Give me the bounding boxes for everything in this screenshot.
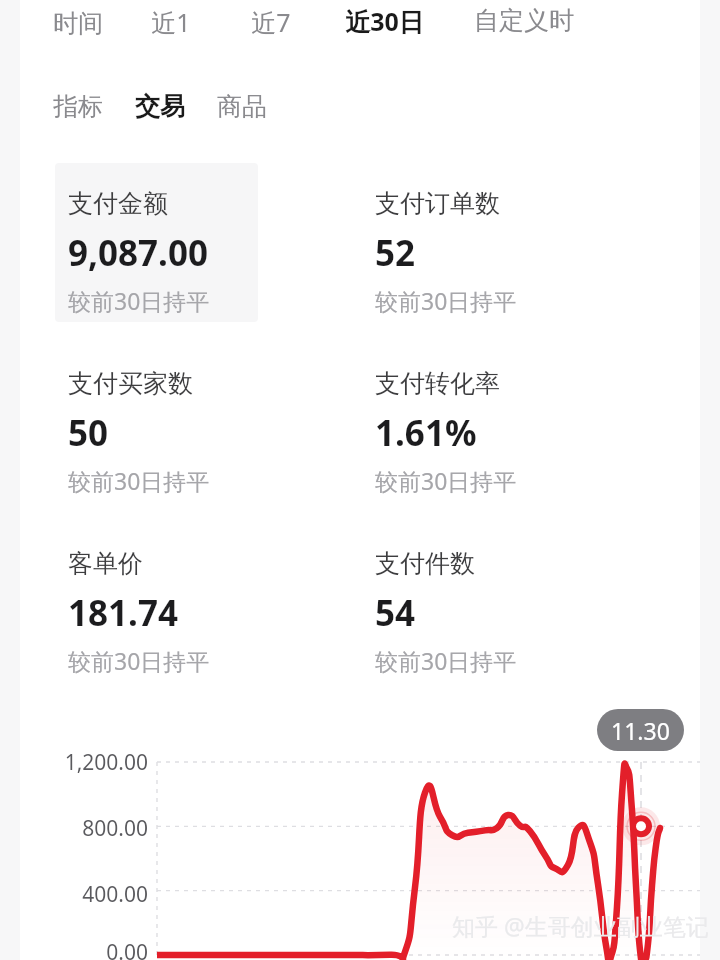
- staticText: 11.30: [611, 715, 670, 746]
- button[interactable]: 商品: [214, 88, 270, 124]
- button[interactable]: 自定义时间: [462, 5, 586, 41]
- staticText: 近7日: [240, 5, 302, 41]
- staticText: 50: [68, 409, 109, 457]
- staticText: 9,087.00: [68, 229, 208, 277]
- staticText: 54: [375, 589, 416, 637]
- staticText: 52: [375, 229, 416, 277]
- staticText: 客单价: [68, 548, 143, 579]
- staticText: 指标: [53, 91, 103, 122]
- staticText: 近30日: [345, 4, 424, 38]
- button[interactable]: 交易: [126, 84, 194, 128]
- staticText: 支付件数: [375, 548, 475, 579]
- staticText: 支付订单数: [375, 188, 500, 219]
- staticText: 支付金额: [68, 188, 168, 219]
- staticText: 自定义时间: [462, 5, 586, 41]
- staticText: 181.74: [68, 589, 178, 637]
- button[interactable]: 支付买家数: [68, 368, 348, 496]
- staticText: 0.00: [106, 938, 148, 960]
- button[interactable]: 11.30: [597, 709, 684, 751]
- staticText: 1.61%: [375, 409, 477, 457]
- button[interactable]: 客单价: [68, 548, 348, 676]
- staticText: 较前30日持平: [68, 465, 210, 496]
- staticText: 较前30日持平: [375, 465, 517, 496]
- button[interactable]: 近7日: [240, 5, 302, 41]
- staticText: 时间: [53, 8, 103, 39]
- staticText: 1,200.00: [64, 748, 148, 777]
- button[interactable]: 时间: [52, 5, 104, 41]
- staticText: 较前30日持平: [68, 285, 210, 316]
- staticText: 支付转化率: [375, 368, 500, 399]
- staticText: 近1日: [140, 5, 202, 41]
- button[interactable]: 近1日: [140, 5, 202, 41]
- staticText: 较前30日持平: [375, 285, 517, 316]
- staticText: 800.00: [82, 814, 148, 843]
- button[interactable]: 指标: [52, 88, 104, 124]
- staticText: 商品: [217, 91, 267, 122]
- button[interactable]: 支付件数: [375, 548, 655, 676]
- staticText: 较前30日持平: [375, 645, 517, 676]
- staticText: 较前30日持平: [68, 645, 210, 676]
- button[interactable]: 支付金额: [68, 188, 348, 316]
- staticText: 交易: [135, 91, 185, 122]
- button[interactable]: 支付转化率: [375, 368, 655, 496]
- staticText: 400.00: [82, 880, 148, 909]
- button[interactable]: 支付订单数: [375, 188, 655, 316]
- staticText: 支付买家数: [68, 368, 193, 399]
- button[interactable]: 近30日: [337, 0, 432, 42]
- staticText: 知乎 @生哥创业副业笔记: [452, 910, 709, 941]
